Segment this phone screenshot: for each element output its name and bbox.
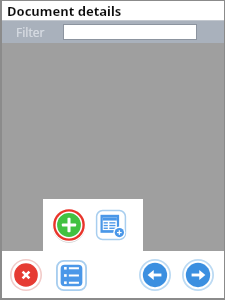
button[interactable]: List	[52, 256, 90, 294]
staticText: Document details	[7, 2, 122, 20]
button[interactable]: Cancel	[7, 256, 45, 294]
button[interactable]: Next	[179, 256, 217, 294]
button[interactable]: Add	[50, 206, 88, 244]
staticText: Filter	[16, 24, 45, 40]
button[interactable]: Previous	[136, 256, 174, 294]
button[interactable]: New document	[94, 208, 128, 242]
